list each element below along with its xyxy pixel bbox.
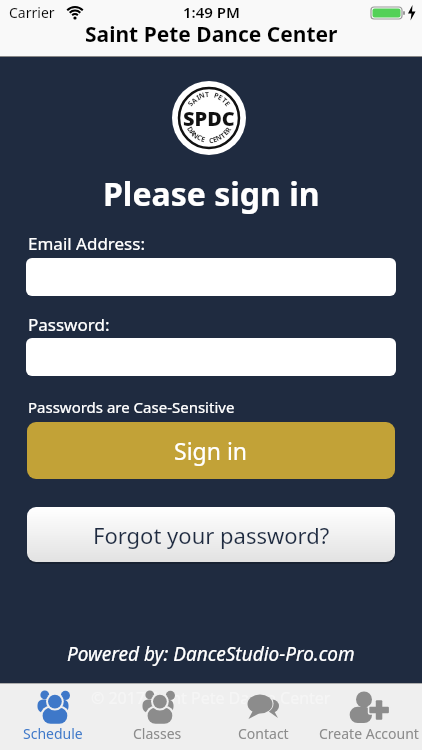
staticText: E — [222, 99, 232, 109]
staticText: E — [221, 128, 231, 138]
staticText: © 2017 Saint Pete Dance Center — [91, 687, 331, 709]
staticText: Classes — [133, 724, 182, 743]
staticText: Carrier — [9, 3, 55, 22]
staticText: A — [187, 128, 198, 138]
staticText: SPDC — [183, 105, 235, 132]
staticText: P — [213, 90, 220, 101]
button[interactable]: Sign in — [27, 422, 395, 479]
staticText: Email Address: — [28, 232, 145, 255]
staticText: N — [198, 90, 206, 102]
button[interactable] — [26, 338, 396, 376]
button[interactable]: Classes — [105, 683, 210, 750]
staticText: T — [219, 96, 230, 106]
button[interactable] — [26, 258, 396, 296]
staticText: C — [208, 136, 214, 146]
staticText: Saint Pete Dance Center — [85, 20, 338, 49]
button[interactable]: Forgot your password? — [27, 507, 395, 562]
staticText: Schedule — [23, 724, 83, 743]
staticText: N — [214, 132, 224, 144]
button[interactable]: Create Account — [316, 683, 422, 750]
staticText: S — [186, 99, 196, 109]
staticText: Passwords are Case-Sensitive — [28, 397, 235, 417]
staticText: Forgot your password? — [93, 520, 330, 550]
staticText: Please sign in — [103, 172, 320, 216]
staticText: Sign in — [174, 435, 248, 466]
staticText: Powered by: DanceStudio-Pro.com — [67, 641, 355, 667]
staticText: T — [204, 90, 210, 100]
staticText: I — [195, 93, 202, 103]
staticText: Create Account — [319, 724, 419, 743]
staticText: Contact — [238, 724, 289, 743]
button[interactable]: Contact — [210, 683, 316, 750]
staticText: R — [223, 125, 234, 135]
staticText: T — [218, 130, 228, 141]
staticText: E — [216, 93, 224, 103]
staticText: A — [189, 96, 200, 106]
staticText: C — [195, 132, 204, 144]
button[interactable]: Schedule — [0, 683, 105, 750]
staticText: 1:49 PM — [183, 2, 240, 22]
staticText: E — [200, 135, 206, 145]
staticText: D — [184, 125, 196, 135]
staticText: E — [212, 135, 218, 145]
staticText: Password: — [28, 313, 110, 336]
staticText: N — [190, 130, 200, 142]
